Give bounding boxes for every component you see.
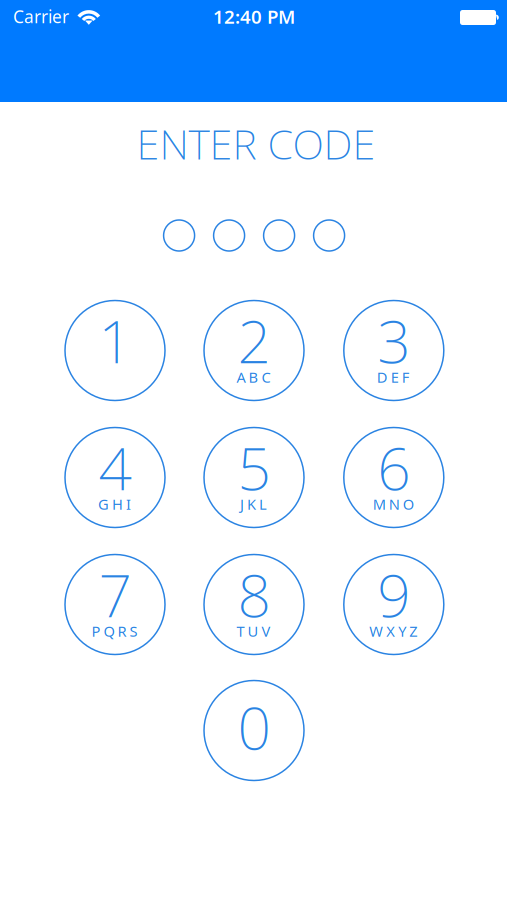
- staticText: W X Y Z: [369, 621, 417, 641]
- staticText: G H I: [98, 494, 131, 514]
- button[interactable]: 0: [204, 680, 304, 780]
- staticText: J K L: [240, 494, 267, 514]
- staticText: 0: [237, 688, 270, 766]
- staticText: ENTER CODE: [136, 116, 375, 171]
- button[interactable]: 1: [65, 300, 165, 400]
- staticText: 8: [237, 555, 270, 633]
- button[interactable]: 9: [344, 554, 444, 654]
- staticText: 7: [98, 555, 131, 633]
- staticText: 9: [377, 555, 410, 633]
- staticText: 6: [377, 428, 410, 506]
- staticText: 3: [377, 301, 410, 379]
- staticText: M N O: [373, 494, 414, 514]
- staticText: 12:40 PM: [213, 4, 295, 29]
- staticText: 4: [98, 428, 131, 506]
- staticText: 1: [98, 301, 131, 379]
- button[interactable]: 4: [65, 427, 165, 527]
- staticText: Carrier: [13, 5, 69, 28]
- button[interactable]: 7: [65, 554, 165, 654]
- button[interactable]: 5: [204, 427, 304, 527]
- staticText: A B C: [236, 367, 270, 387]
- button[interactable]: 3: [344, 300, 444, 400]
- staticText: P Q R S: [91, 621, 137, 641]
- staticText: T U V: [236, 621, 270, 641]
- staticText: 2: [237, 301, 270, 379]
- staticText: 5: [237, 428, 270, 506]
- button[interactable]: 6: [344, 427, 444, 527]
- staticText: D E F: [377, 367, 410, 387]
- button[interactable]: 2: [204, 300, 304, 400]
- button[interactable]: 8: [204, 554, 304, 654]
